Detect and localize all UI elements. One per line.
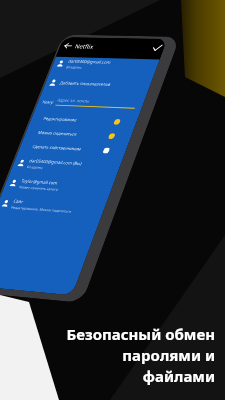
staticText: dar05400@gmail.com	[67, 59, 112, 65]
button[interactable]: Можно поделиться	[37, 130, 116, 139]
button[interactable]: Done	[151, 44, 163, 52]
staticText: Можно поделиться	[37, 130, 78, 137]
staticText: Добавить пользователей	[59, 80, 112, 88]
staticText: Адрес эл. почты	[56, 97, 91, 104]
staticText: Netflix	[74, 43, 95, 51]
staticText: Сделать собственником	[31, 144, 82, 152]
staticText: Владелец	[66, 65, 83, 69]
staticText: Редактирование	[42, 116, 78, 123]
staticText: Может изменять записи	[18, 185, 60, 192]
button[interactable]: Back	[63, 42, 74, 50]
staticText: Кому:	[42, 99, 55, 105]
button[interactable]: dar05400@gmail.com	[52, 57, 160, 73]
staticText: Taylor@gmail.com	[20, 178, 59, 186]
staticText: Безопасный обмен паролями и файлами	[66, 324, 215, 387]
button[interactable]: Taylor@gmail.com	[5, 176, 114, 197]
button[interactable]: Сделать собственником	[31, 144, 110, 154]
staticText: Сайт	[12, 198, 25, 205]
button[interactable]: Редактирование	[42, 116, 121, 125]
button[interactable]: Добавить пользователей	[45, 77, 152, 91]
button[interactable]: dar05400@gmail.com (Вы)	[13, 156, 122, 176]
staticText: Редактирование. Можно поделиться	[10, 205, 72, 214]
staticText: dar05400@gmail.com (Вы)	[28, 158, 83, 167]
staticText: Владелец	[26, 165, 44, 170]
button[interactable]: Сайт	[0, 196, 106, 218]
